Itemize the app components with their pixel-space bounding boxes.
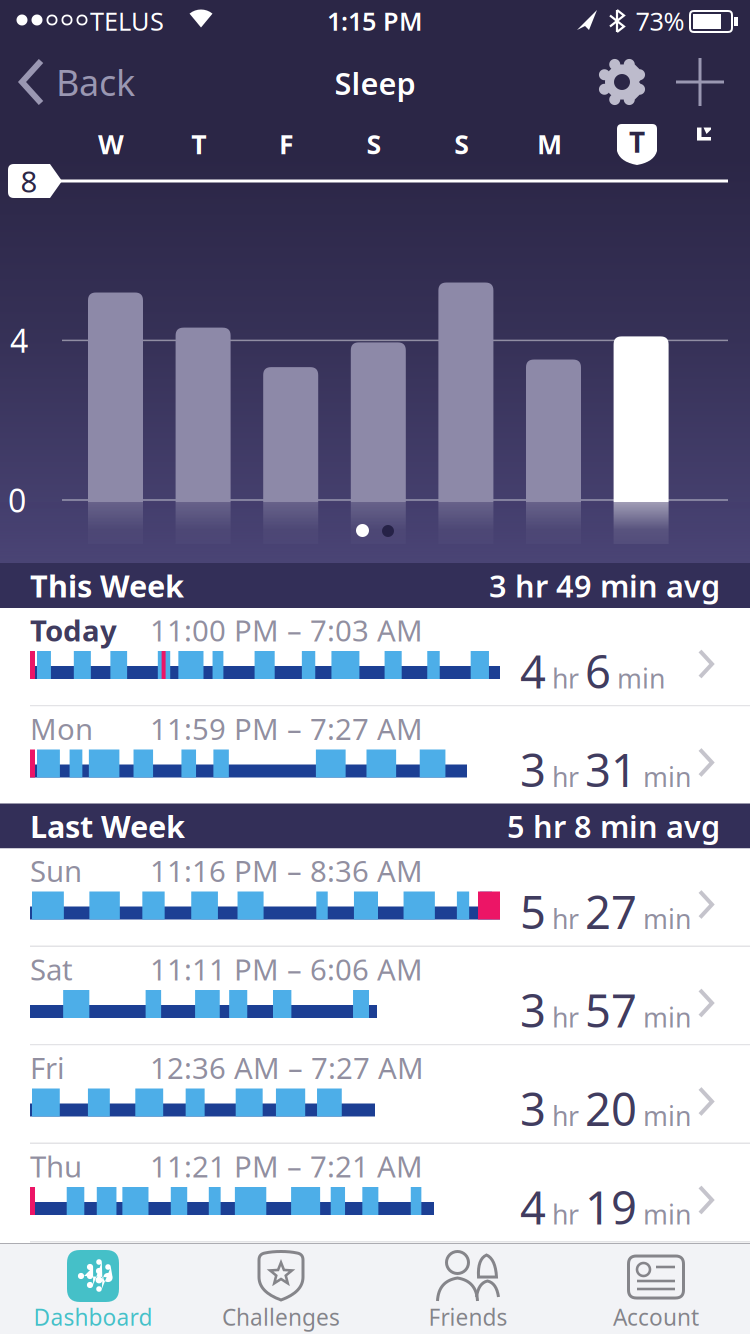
button[interactable]: M — [519, 121, 579, 167]
button[interactable]: F — [256, 121, 316, 167]
staticText: F — [279, 126, 294, 162]
button[interactable]: T — [617, 124, 657, 166]
staticText: 11:21 PM – 7:21 AM — [150, 1146, 423, 1185]
staticText: 20 — [585, 1078, 637, 1139]
staticText: 3 — [520, 739, 546, 800]
staticText: Thu — [30, 1146, 82, 1185]
staticText: 27 — [585, 881, 637, 942]
staticText: hr — [552, 901, 579, 936]
button[interactable]: Thu — [0, 1144, 750, 1241]
button[interactable]: Sun — [0, 848, 750, 945]
staticText: 4 — [10, 319, 28, 362]
staticText: 0 — [8, 479, 26, 521]
staticText: Sleep — [334, 63, 415, 103]
button[interactable]: Friends — [375, 1243, 561, 1334]
staticText: T — [629, 123, 645, 161]
staticText: 11:16 PM – 8:36 AM — [150, 851, 423, 890]
staticText: S — [454, 126, 469, 162]
staticText: hr — [552, 999, 579, 1035]
button[interactable]: Back — [18, 52, 198, 112]
staticText: Back — [56, 58, 135, 106]
button[interactable]: Dashboard — [0, 1243, 186, 1334]
staticText: M — [537, 126, 562, 162]
staticText: Fri — [30, 1048, 65, 1087]
staticText: Today — [30, 610, 117, 649]
staticText: 4 — [520, 1177, 546, 1237]
staticText: W — [98, 126, 124, 162]
staticText: S — [367, 126, 382, 162]
staticText: 3 hr 49 min avg — [489, 565, 720, 606]
staticText: Mon — [30, 709, 93, 748]
staticText: hr — [552, 759, 579, 794]
button[interactable]: Sat — [0, 947, 750, 1044]
button[interactable]: S — [344, 121, 404, 167]
staticText: min — [643, 1098, 691, 1133]
button[interactable]: Jump to today — [697, 127, 711, 140]
staticText: Last Week — [30, 806, 185, 846]
button[interactable]: Challenges — [188, 1243, 374, 1334]
staticText: 1:15 PM — [327, 4, 423, 38]
button[interactable]: Account — [563, 1243, 749, 1334]
button[interactable]: W — [81, 121, 141, 167]
staticText: min — [643, 759, 691, 794]
button[interactable]: S — [432, 121, 492, 167]
staticText: 8 — [20, 161, 37, 200]
button[interactable]: T — [169, 121, 229, 167]
staticText: This Week — [30, 565, 184, 606]
staticText: hr — [552, 1098, 579, 1133]
staticText: 5 hr 8 min avg — [507, 806, 720, 846]
staticText: T — [191, 126, 206, 162]
staticText: hr — [552, 1196, 579, 1232]
button[interactable]: Add sleep log — [676, 58, 724, 106]
staticText: 11:11 PM – 6:06 AM — [150, 949, 423, 988]
button[interactable]: Fri — [0, 1045, 750, 1142]
staticText: 11:59 PM – 7:27 AM — [150, 709, 423, 748]
button[interactable]: Mon — [0, 706, 750, 803]
staticText: Dashboard — [33, 1302, 152, 1332]
staticText: 11:00 PM – 7:03 AM — [150, 610, 423, 649]
button[interactable]: Settings — [596, 56, 648, 108]
staticText: Sat — [30, 949, 73, 988]
staticText: 3 — [520, 1078, 546, 1139]
button[interactable]: Today — [0, 608, 750, 705]
staticText: 31 — [585, 739, 637, 800]
staticText: min — [643, 901, 691, 936]
staticText: 57 — [585, 980, 637, 1040]
staticText: 73% — [635, 4, 684, 38]
staticText: 3 — [520, 980, 546, 1040]
staticText: min — [643, 999, 691, 1035]
staticText: TELUS — [90, 4, 164, 38]
staticText: 5 — [520, 881, 546, 942]
staticText: Account — [613, 1302, 699, 1332]
staticText: Sun — [30, 851, 82, 890]
staticText: hr — [552, 660, 579, 696]
staticText: Challenges — [222, 1302, 340, 1332]
staticText: Friends — [428, 1302, 507, 1332]
staticText: min — [643, 1196, 691, 1232]
staticText: 4 — [520, 641, 546, 701]
staticText: 12:36 AM – 7:27 AM — [150, 1048, 424, 1087]
staticText: 19 — [585, 1177, 637, 1237]
staticText: min — [617, 660, 665, 696]
staticText: 6 — [585, 641, 611, 701]
